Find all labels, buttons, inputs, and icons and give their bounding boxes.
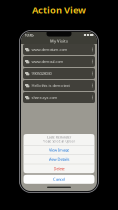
button[interactable]: share-xyz.com xyxy=(23,92,95,103)
staticText: www.demotum.com xyxy=(31,47,67,52)
button[interactable]: View Image xyxy=(23,145,94,154)
staticText: Delete xyxy=(53,166,64,171)
button[interactable]: Hello this is demo text xyxy=(23,80,95,91)
staticText: Action View xyxy=(32,4,86,16)
staticText: Code Reminder xyxy=(47,136,71,139)
staticText: My Visits xyxy=(50,38,68,44)
staticText: View Image xyxy=(49,147,69,152)
staticText: www.demoul.com xyxy=(31,59,63,64)
staticText: Please Select an Option xyxy=(42,140,75,143)
staticText: 9905028030 xyxy=(31,71,51,76)
button[interactable]: Cancel xyxy=(23,175,94,184)
staticText: 10:45 xyxy=(24,32,33,38)
button[interactable]: www.demotum.com xyxy=(23,44,95,55)
button[interactable]: View Details xyxy=(23,155,94,164)
button[interactable]: www.demoul.com xyxy=(23,56,95,67)
staticText: share-xyz.com xyxy=(31,95,57,100)
button[interactable]: Delete xyxy=(23,164,94,173)
staticText: Cancel xyxy=(53,177,65,182)
staticText: Hello this is demo text xyxy=(31,83,69,88)
button[interactable]: 9905028030 xyxy=(23,68,95,79)
staticText: View Details xyxy=(48,157,69,162)
